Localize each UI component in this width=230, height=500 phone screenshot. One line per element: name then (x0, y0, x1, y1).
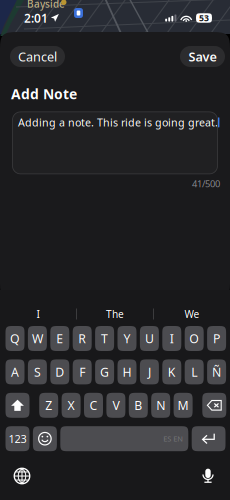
button[interactable]: Y (117, 326, 136, 351)
button[interactable]: P (207, 326, 226, 351)
staticText: Cancel (18, 48, 57, 65)
button[interactable]: M (174, 393, 193, 418)
staticText: Q (10, 330, 20, 347)
button[interactable]: K (162, 359, 181, 384)
button[interactable]: H (117, 359, 136, 384)
button[interactable]: A (5, 359, 24, 384)
button[interactable]: E (50, 326, 69, 351)
staticText: The (106, 307, 124, 321)
button[interactable]: Save (180, 46, 225, 67)
button[interactable]: W (28, 326, 47, 351)
staticText: 41/500 (192, 177, 220, 190)
staticText: 2:01 (24, 10, 48, 26)
button[interactable]: 123 (5, 426, 29, 451)
staticText: Adding a note. This ride is going great. (18, 115, 218, 130)
staticText: C (89, 397, 97, 414)
staticText: K (168, 363, 176, 380)
button[interactable]: J (140, 359, 159, 384)
staticText: V (112, 397, 119, 414)
staticText: Save (188, 48, 216, 65)
staticText: O (189, 330, 199, 347)
staticText: L (191, 363, 197, 380)
staticText: I (170, 330, 174, 347)
staticText: I (36, 307, 39, 321)
staticText: W (32, 330, 43, 347)
staticText: ES EN (163, 434, 183, 444)
button[interactable]: F (73, 359, 92, 384)
staticText: Bayside (27, 0, 65, 11)
button[interactable]: We (154, 304, 230, 324)
button[interactable]: U (140, 326, 159, 351)
staticText: 53 (199, 12, 209, 24)
staticText: S (34, 363, 41, 380)
staticText: H (122, 363, 131, 380)
button[interactable]: O (185, 326, 204, 351)
staticText: Ñ (212, 363, 221, 380)
button[interactable]: The (77, 304, 153, 324)
button[interactable]: I (0, 304, 76, 324)
button[interactable]: V (106, 393, 125, 418)
button[interactable]: Space (60, 426, 188, 451)
staticText: N (156, 397, 165, 414)
staticText: F (79, 363, 85, 380)
staticText: T (101, 330, 108, 347)
button[interactable]: N (151, 393, 170, 418)
staticText: P (213, 330, 220, 347)
staticText: We (184, 307, 199, 321)
button[interactable]: R (73, 326, 92, 351)
button[interactable]: D (50, 359, 69, 384)
button[interactable]: Return (192, 426, 225, 451)
button[interactable]: S (28, 359, 47, 384)
staticText: G (100, 363, 109, 380)
button[interactable]: X (62, 393, 81, 418)
staticText: R (78, 330, 86, 347)
staticText: D (55, 363, 64, 380)
button[interactable]: L (185, 359, 204, 384)
staticText: J (148, 363, 151, 380)
staticText: Z (45, 397, 52, 414)
button[interactable]: T (95, 326, 114, 351)
staticText: 123 (8, 431, 26, 446)
button[interactable]: Z (39, 393, 58, 418)
button[interactable]: Dictation (193, 462, 223, 490)
button[interactable]: Delete (202, 393, 226, 418)
button[interactable]: B (129, 393, 148, 418)
button[interactable]: Emoji (33, 426, 57, 451)
staticText: M (178, 397, 189, 414)
button[interactable]: I (162, 326, 181, 351)
staticText: E (56, 330, 63, 347)
staticText: X (68, 397, 75, 414)
button[interactable]: Next keyboard (7, 462, 37, 490)
staticText: U (145, 330, 154, 347)
button[interactable]: G (95, 359, 114, 384)
button[interactable]: C (84, 393, 103, 418)
staticText: B (134, 397, 142, 414)
button[interactable]: Shift (5, 393, 29, 418)
staticText: A (11, 363, 19, 380)
staticText: Y (123, 330, 130, 347)
button[interactable]: Ñ (207, 359, 226, 384)
button[interactable]: Q (5, 326, 24, 351)
button[interactable]: Cancel (10, 46, 65, 67)
staticText: Add Note (11, 84, 77, 103)
